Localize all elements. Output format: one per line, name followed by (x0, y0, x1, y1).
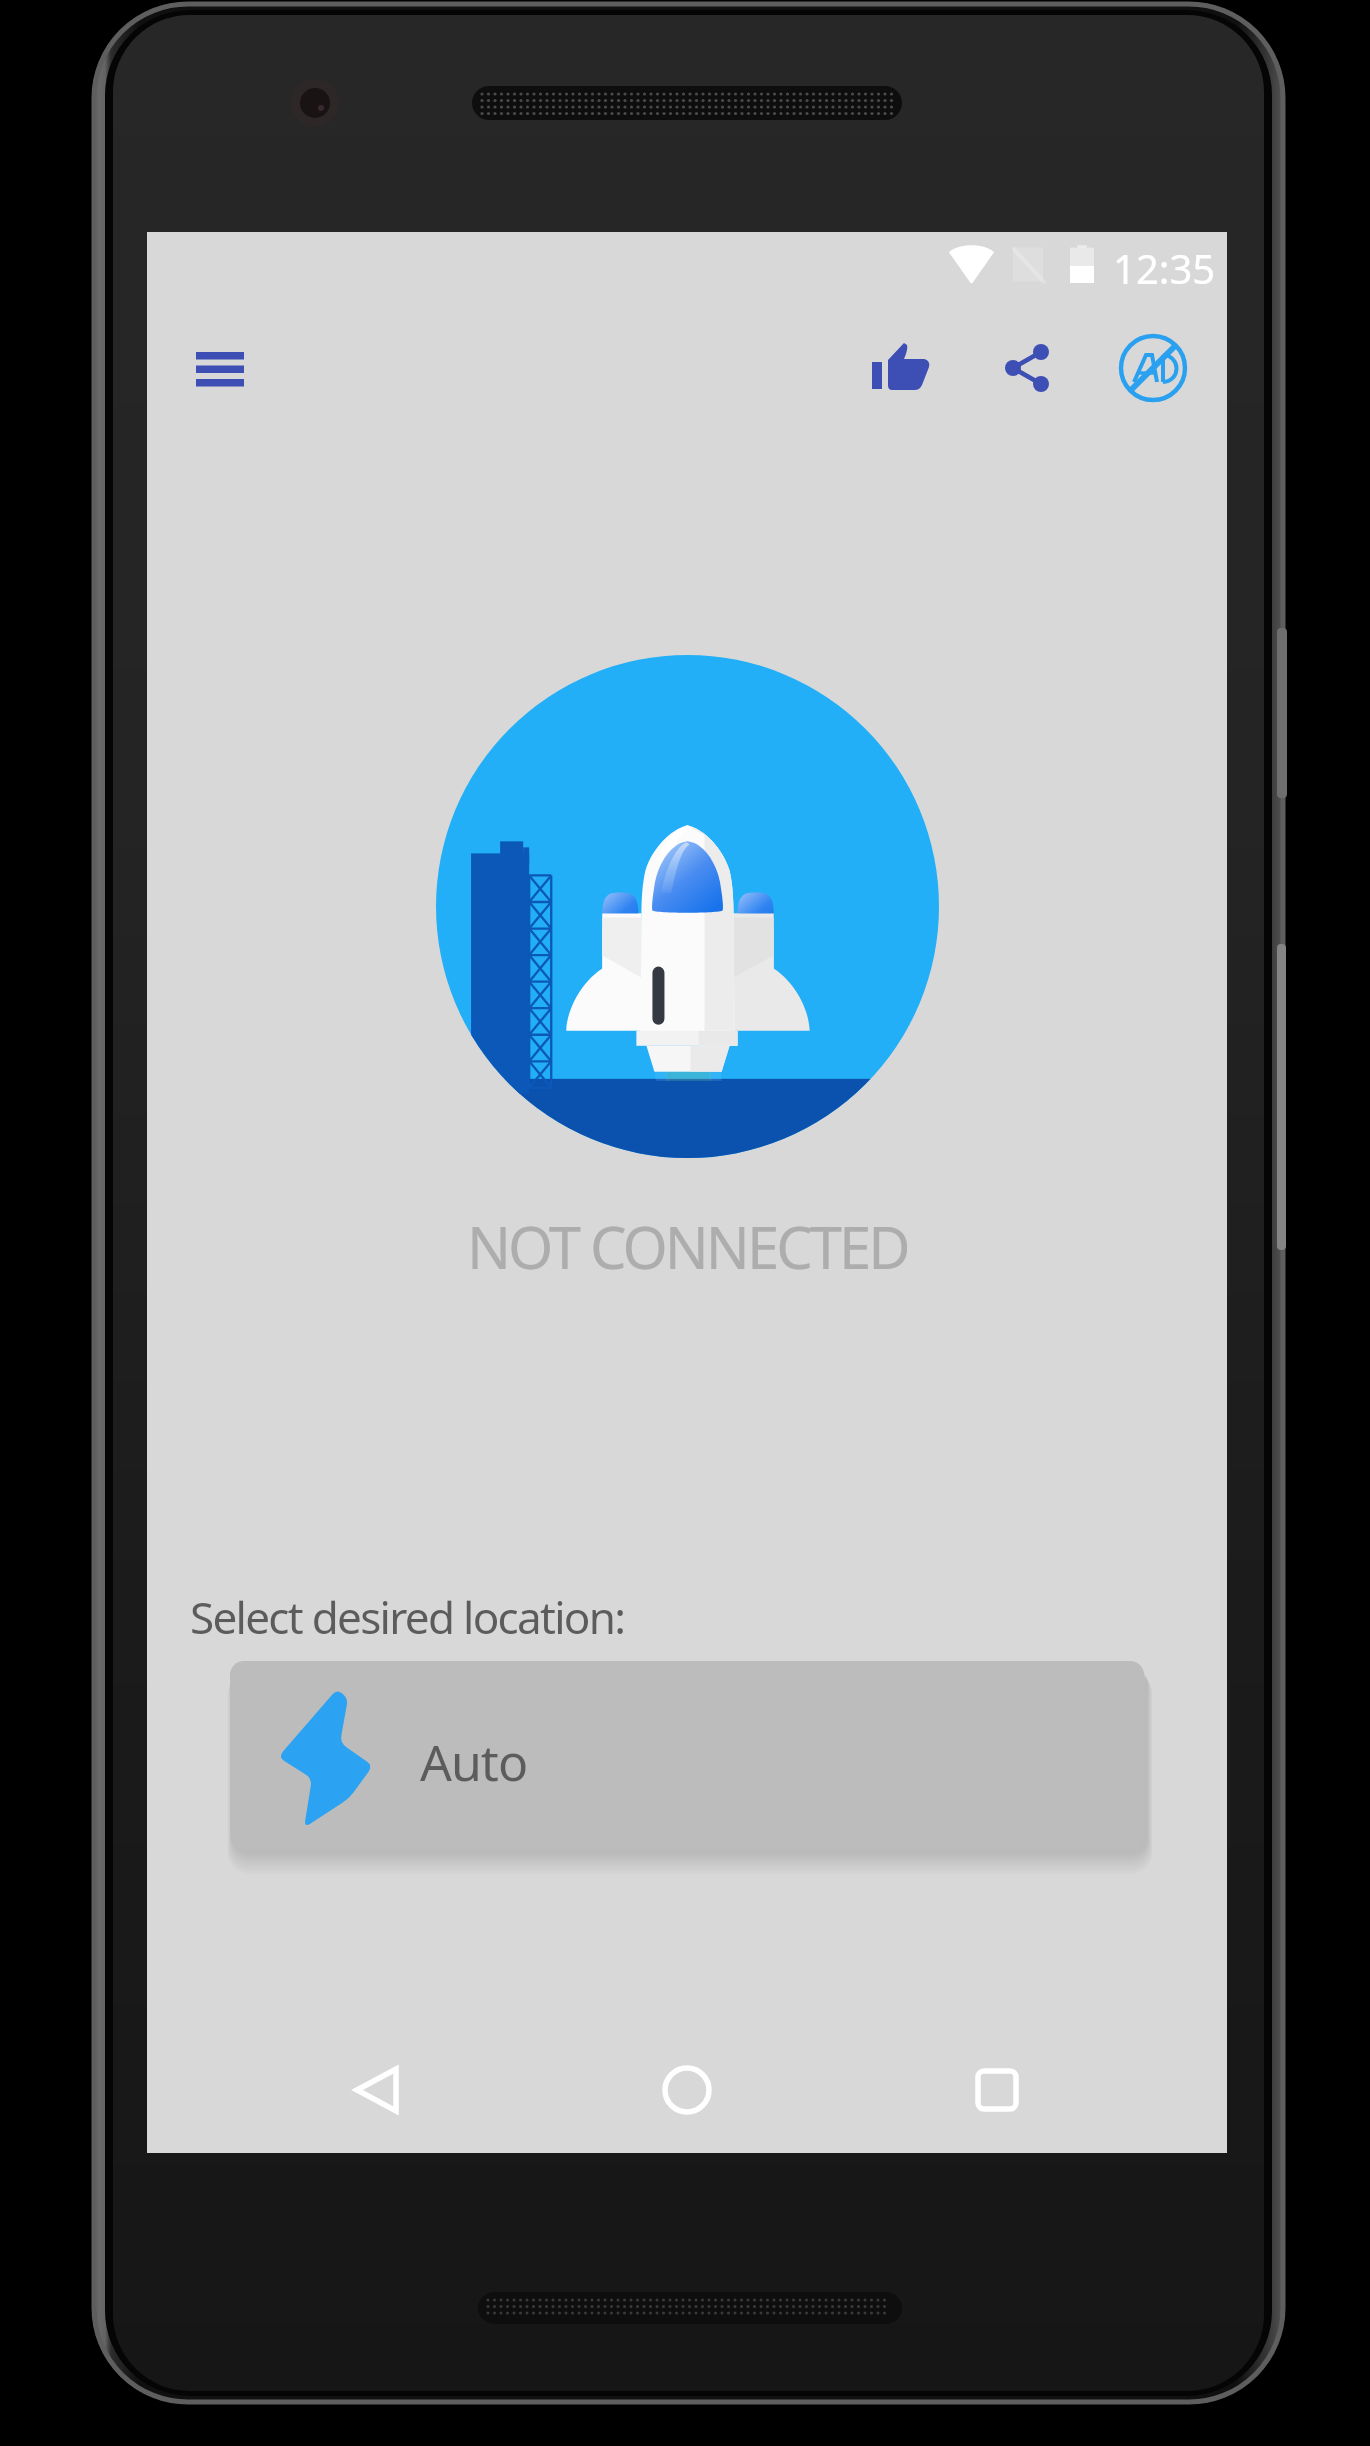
button[interactable]: Back (306, 2020, 446, 2160)
staticText: Select desired location: (190, 1587, 625, 1647)
button[interactable]: Share (983, 324, 1071, 412)
button[interactable]: Home (617, 2020, 757, 2160)
staticText: Auto (420, 1728, 528, 1796)
staticText: 12:35 (1113, 241, 1216, 295)
button[interactable]: Like (858, 324, 946, 412)
button[interactable]: Remove ads (1109, 324, 1197, 412)
button[interactable]: Recent apps (927, 2020, 1067, 2160)
button[interactable]: Open navigation menu (176, 325, 264, 413)
staticText: NOT CONNECTED (467, 1207, 908, 1286)
button[interactable]: Auto (230, 1661, 1144, 1849)
